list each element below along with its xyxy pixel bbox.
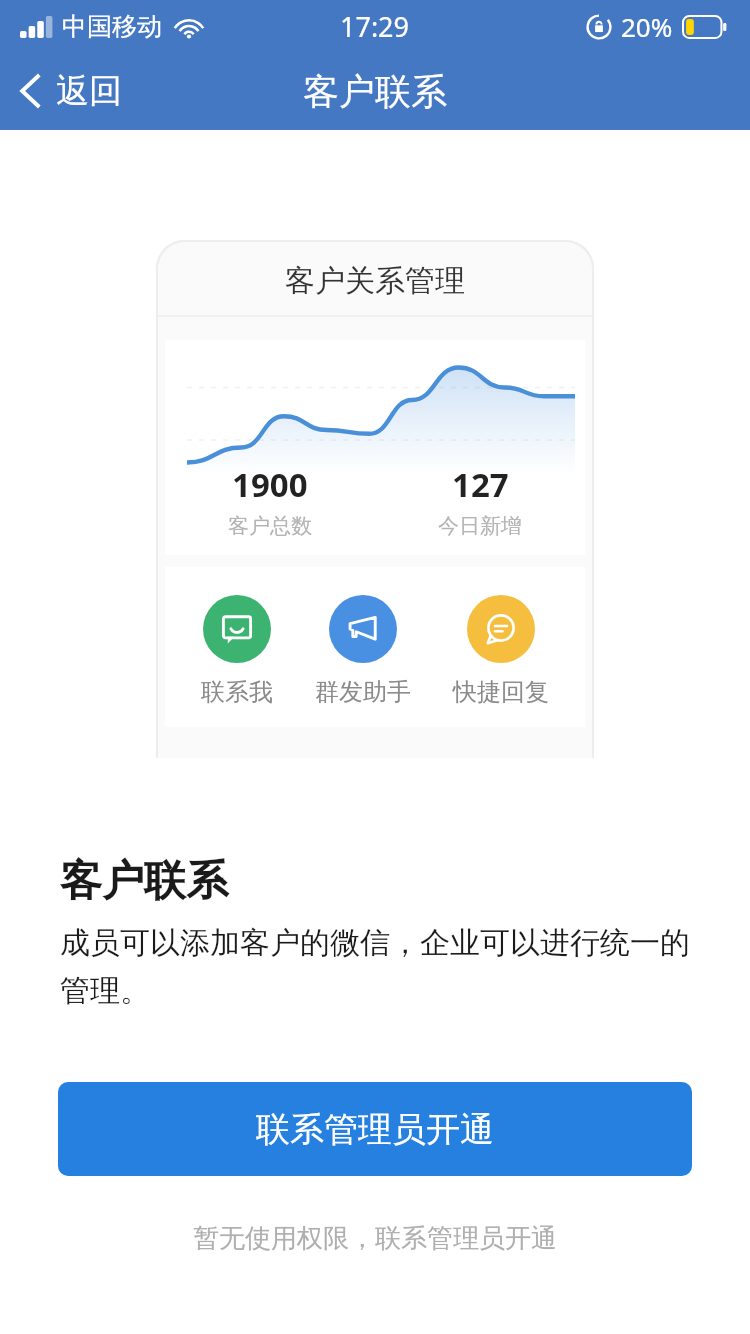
staticText: 成员可以添加客户的微信，企业可以进行统一的管理。 — [60, 924, 704, 1010]
staticText: 17:29 — [340, 8, 410, 45]
staticText: 快捷回复 — [453, 677, 549, 707]
staticText: 联系我 — [201, 677, 273, 707]
staticText: 返回 — [56, 70, 122, 112]
staticText: 今日新增 — [438, 513, 522, 539]
staticText: 客户联系 — [303, 69, 447, 114]
button[interactable]: 返回 — [0, 52, 140, 130]
staticText: 客户联系 — [60, 855, 228, 908]
staticText: 中国移动 — [62, 11, 162, 42]
staticText: 127 — [452, 462, 509, 507]
staticText: 客户关系管理 — [285, 262, 465, 300]
button[interactable]: 群发助手 — [309, 595, 417, 707]
button[interactable]: 联系我 — [195, 595, 279, 707]
staticText: 联系管理员开通 — [256, 1108, 494, 1151]
staticText: 暂无使用权限，联系管理员开通 — [193, 1222, 557, 1255]
staticText: 群发助手 — [315, 677, 411, 707]
button[interactable]: 联系管理员开通 — [58, 1082, 692, 1176]
staticText: 20% — [621, 9, 673, 44]
staticText: 1900 — [232, 462, 308, 507]
staticText: 客户总数 — [228, 513, 312, 539]
button[interactable]: 快捷回复 — [447, 595, 555, 707]
